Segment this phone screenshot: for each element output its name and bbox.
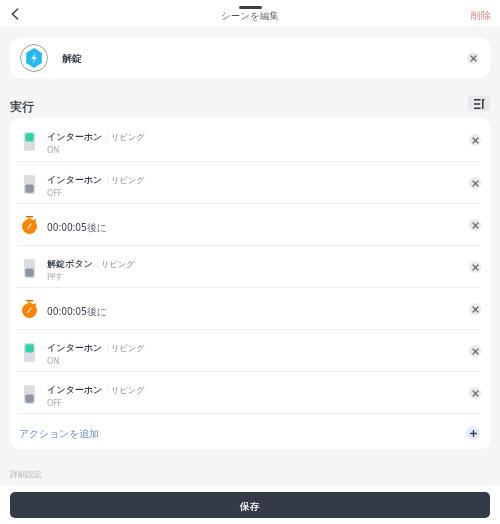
staticText: OFF (47, 397, 62, 408)
staticText: ON (47, 144, 60, 155)
staticText: リビング (101, 259, 135, 269)
staticText: 削除 (471, 9, 491, 22)
staticText: インターホン (47, 131, 103, 142)
staticText: インターホン (47, 342, 103, 353)
button[interactable]: インターホン (10, 372, 490, 413)
button[interactable]: 00:00:05後に (10, 204, 490, 245)
staticText: 解錠ボタン (47, 258, 93, 269)
button[interactable]: Remove (469, 219, 481, 231)
button[interactable]: 削除 (463, 0, 500, 26)
staticText: 00:00:05後に (47, 220, 107, 234)
button[interactable]: Remove (469, 177, 481, 189)
staticText: リビング (111, 385, 145, 395)
staticText: 00:00:05後に (47, 304, 107, 318)
staticText: 保存 (240, 501, 260, 513)
staticText: 実行 (10, 99, 34, 114)
button[interactable]: 保存 (10, 492, 490, 518)
staticText: 詳細設定 (10, 469, 42, 479)
button[interactable]: 解錠 (10, 38, 490, 78)
staticText: インターホン (47, 384, 103, 395)
staticText: リビング (111, 343, 145, 353)
button[interactable]: アクションを追加 (10, 414, 490, 449)
button[interactable]: Remove (469, 303, 481, 315)
staticText: ON (47, 355, 60, 366)
staticText: 押す (47, 271, 64, 281)
staticText: リビング (111, 175, 145, 185)
button[interactable]: Remove (469, 261, 481, 273)
button[interactable]: 解錠ボタン (10, 246, 490, 287)
button[interactable]: Add action (466, 426, 480, 440)
staticText: シーンを編集 (221, 10, 279, 22)
staticText: アクションを追加 (19, 428, 99, 440)
staticText: リビング (111, 132, 145, 142)
button[interactable]: Remove (467, 52, 479, 64)
button[interactable]: 00:00:05後に (10, 288, 490, 329)
button[interactable]: Back (0, 0, 30, 26)
staticText: インターホン (47, 174, 103, 185)
button[interactable]: Remove (469, 134, 481, 146)
button[interactable]: Remove (469, 387, 481, 399)
button[interactable]: Reorder (468, 96, 490, 111)
staticText: OFF (47, 187, 62, 198)
button[interactable]: インターホン (10, 330, 490, 371)
button[interactable]: インターホン (10, 162, 490, 203)
button[interactable]: Remove (469, 345, 481, 357)
staticText: 解錠 (62, 52, 82, 65)
button[interactable]: インターホン (10, 118, 490, 161)
